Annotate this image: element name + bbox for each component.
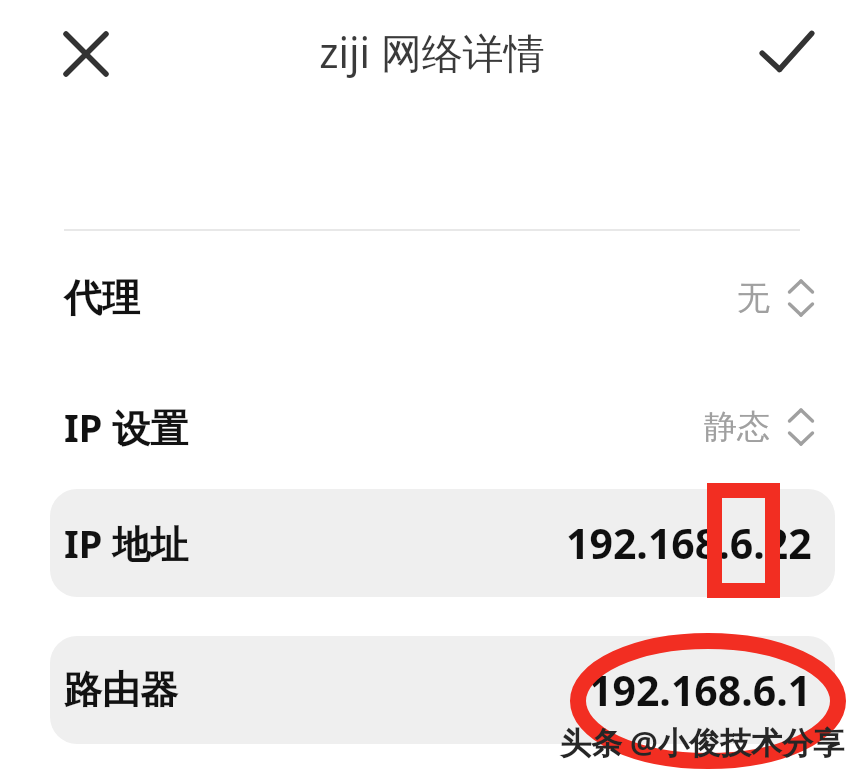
button[interactable]: IP 设置 <box>0 364 864 489</box>
staticText: 无 <box>737 277 770 319</box>
staticText: IP 设置 <box>64 401 189 453</box>
staticText: 路由器 <box>64 666 178 714</box>
staticText: 静态 <box>704 406 770 448</box>
button[interactable]: 代理 <box>0 231 864 364</box>
other: Change <box>784 274 818 322</box>
staticText: ziji 网络详情 <box>319 24 545 80</box>
button[interactable]: 路由器 <box>50 636 835 744</box>
other: Change <box>784 403 818 451</box>
staticText: 192.168.6.22 <box>566 515 812 571</box>
staticText: 头条 @小俊技术分享 <box>560 721 844 763</box>
staticText: 代理 <box>64 274 140 322</box>
button[interactable]: IP 地址 <box>50 489 835 597</box>
button[interactable]: Save <box>756 21 818 83</box>
staticText: 192.168.6.1 <box>589 662 812 718</box>
button[interactable]: Close <box>56 24 116 84</box>
staticText: IP 地址 <box>64 517 189 569</box>
